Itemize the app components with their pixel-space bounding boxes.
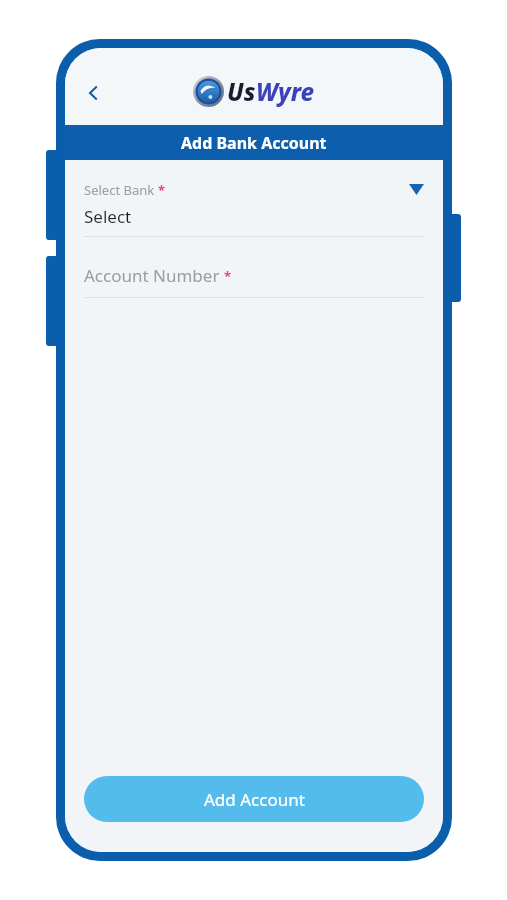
- staticText: Select Bank: [84, 181, 158, 199]
- button[interactable]: Select Bank: [84, 181, 424, 237]
- staticText: Add Account: [204, 788, 305, 811]
- button[interactable]: Add Account: [84, 776, 424, 822]
- button[interactable]: Account Number: [84, 264, 424, 298]
- staticText: Select: [84, 205, 132, 228]
- staticText: *: [224, 267, 232, 285]
- button[interactable]: Back: [71, 70, 117, 116]
- staticText: Add Bank Account: [181, 132, 327, 154]
- staticText: Us: [227, 75, 256, 108]
- staticText: Wyre: [256, 75, 315, 108]
- staticText: *: [158, 181, 166, 199]
- staticText: Account Number: [84, 264, 224, 287]
